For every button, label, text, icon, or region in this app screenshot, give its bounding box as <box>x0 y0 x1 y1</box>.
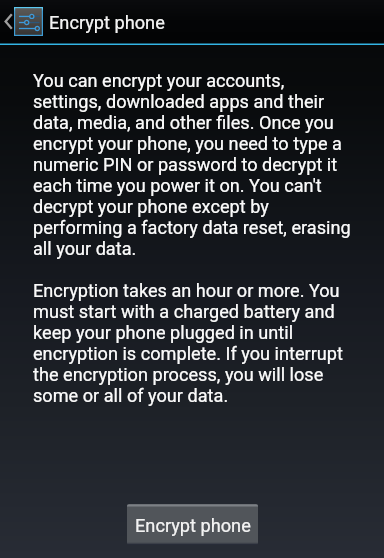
button[interactable]: Navigate up, Encrypt phone <box>0 0 165 43</box>
staticText: You can encrypt your accounts, settings,… <box>33 70 351 406</box>
staticText: Encrypt phone <box>135 515 251 536</box>
staticText: Encrypt phone <box>49 12 165 33</box>
button[interactable]: Encrypt phone <box>127 504 258 545</box>
